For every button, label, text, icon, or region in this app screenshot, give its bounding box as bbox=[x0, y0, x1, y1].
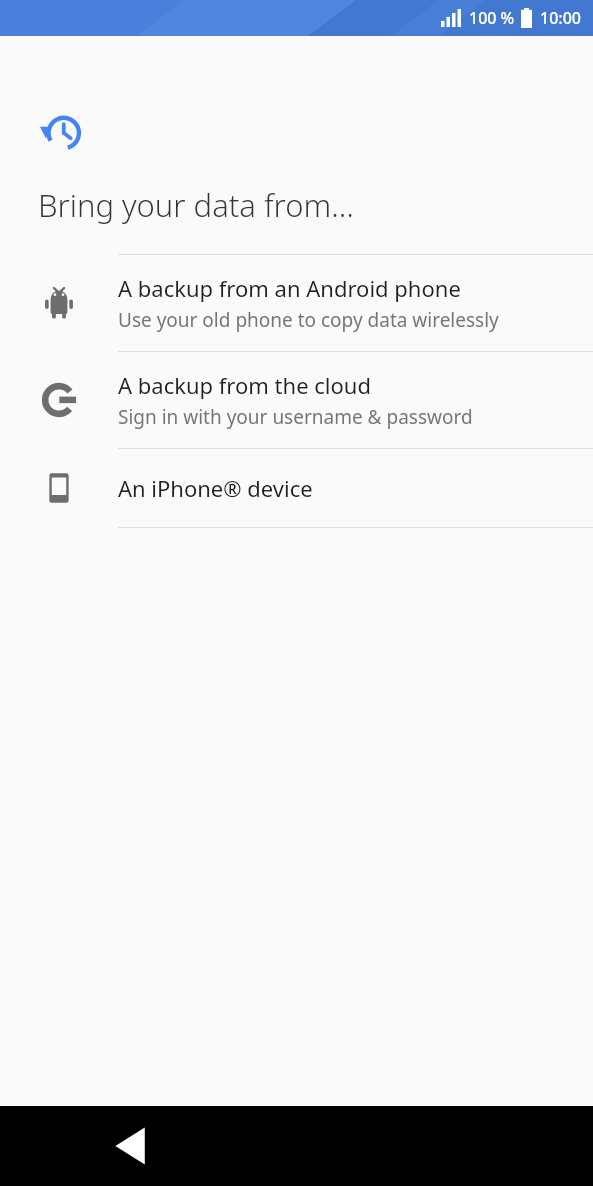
button[interactable]: Google cloud bbox=[0, 352, 593, 448]
button[interactable]: iPhone device bbox=[0, 449, 593, 527]
button[interactable]: Android phone bbox=[0, 255, 593, 351]
staticText: A backup from the cloud bbox=[118, 370, 371, 400]
staticText: An iPhone® device bbox=[118, 473, 313, 503]
staticText: A backup from an Android phone bbox=[118, 273, 461, 303]
staticText: 100 % bbox=[469, 7, 515, 29]
staticText: 10:00 bbox=[540, 7, 581, 29]
staticText: Use your old phone to copy data wireless… bbox=[118, 307, 499, 333]
button[interactable]: Back bbox=[106, 1120, 158, 1172]
other: Google cloud bbox=[38, 379, 80, 421]
staticText: Sign in with your username & password bbox=[118, 404, 473, 430]
staticText: Bring your data from… bbox=[38, 184, 354, 226]
other: Android phone bbox=[38, 282, 80, 324]
other: iPhone device bbox=[38, 467, 80, 509]
